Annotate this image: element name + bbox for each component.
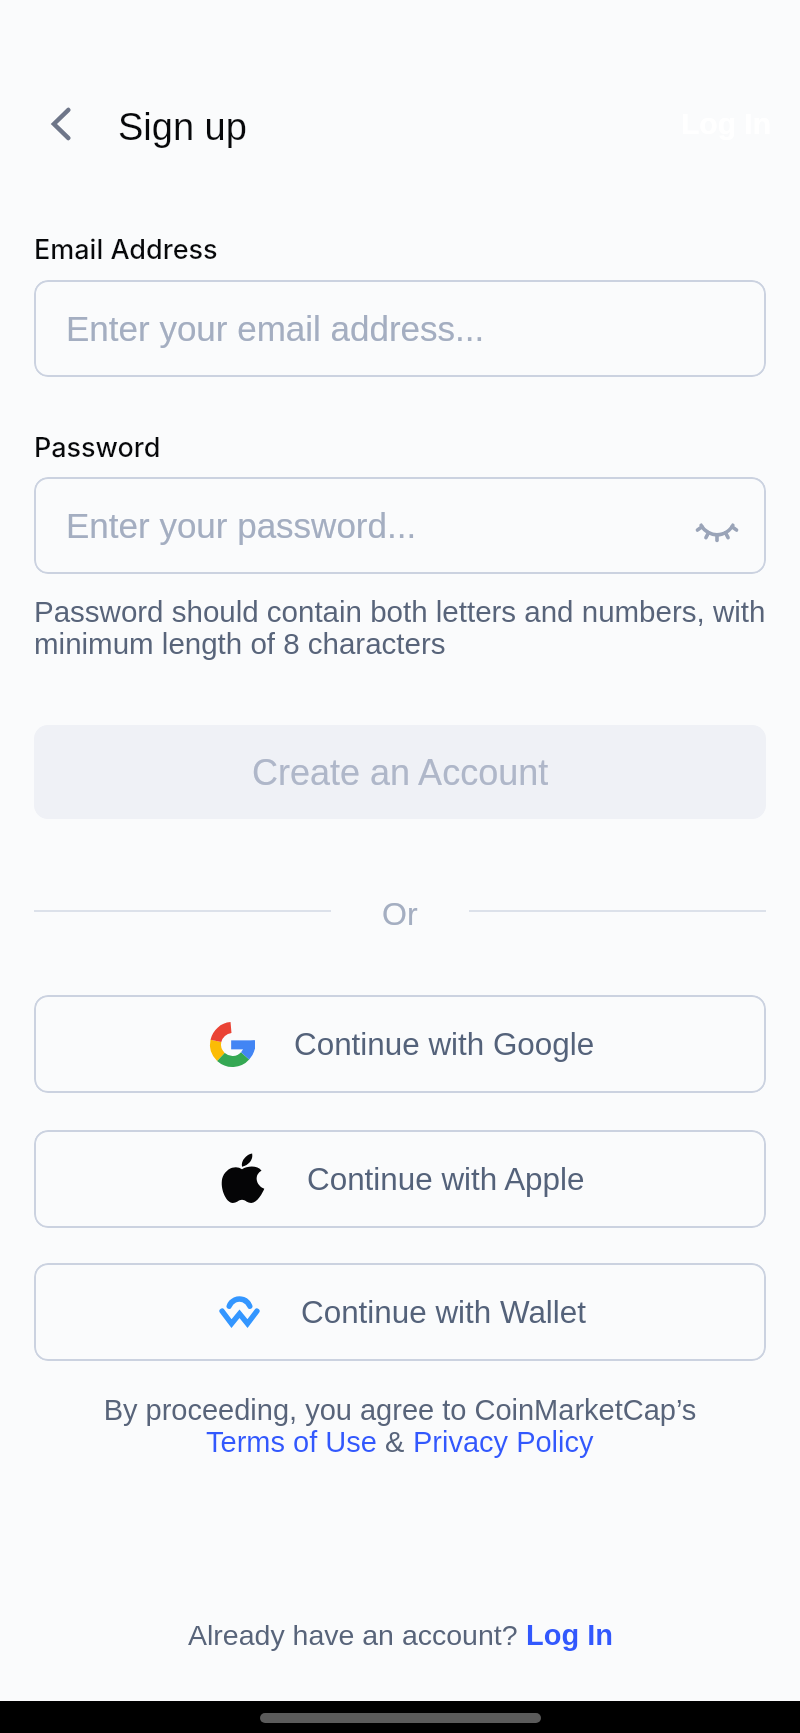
staticText: Password should contain both letters and… (34, 595, 766, 661)
staticText: By proceeding, you agree to CoinMarketCa… (0, 1394, 800, 1426)
staticText: Continue with Apple (307, 1162, 585, 1197)
staticText: Already have an account? (188, 1619, 526, 1651)
staticText: Terms of Use (206, 1426, 377, 1458)
button[interactable]: Enter your password... (34, 477, 766, 574)
staticText: Enter your email address... (66, 309, 485, 348)
button[interactable]: Continue with Apple (34, 1130, 766, 1228)
button[interactable]: Log In (526, 1619, 613, 1651)
staticText: Enter your password... (66, 506, 417, 545)
button[interactable]: Terms of Use (206, 1426, 377, 1458)
staticText: Continue with Google (294, 1027, 595, 1062)
button[interactable]: Enter your email address... (34, 280, 766, 377)
staticText: & (377, 1426, 413, 1458)
button[interactable]: Continue with Wallet (34, 1263, 766, 1361)
button[interactable]: Privacy Policy (413, 1426, 594, 1458)
staticText: Create an Account (252, 752, 549, 792)
button[interactable]: Back (36, 100, 84, 148)
button[interactable]: Show password (691, 500, 743, 552)
button[interactable]: Create an Account (34, 725, 766, 819)
staticText: Or (382, 896, 418, 926)
staticText: Continue with Wallet (301, 1295, 586, 1330)
staticText: Email Address (34, 233, 218, 266)
button[interactable]: Continue with Google (34, 995, 766, 1093)
staticText: Sign up (118, 106, 247, 148)
staticText: Privacy Policy (413, 1426, 594, 1458)
staticText: Log In (526, 1619, 613, 1651)
staticText: Password (34, 431, 161, 464)
